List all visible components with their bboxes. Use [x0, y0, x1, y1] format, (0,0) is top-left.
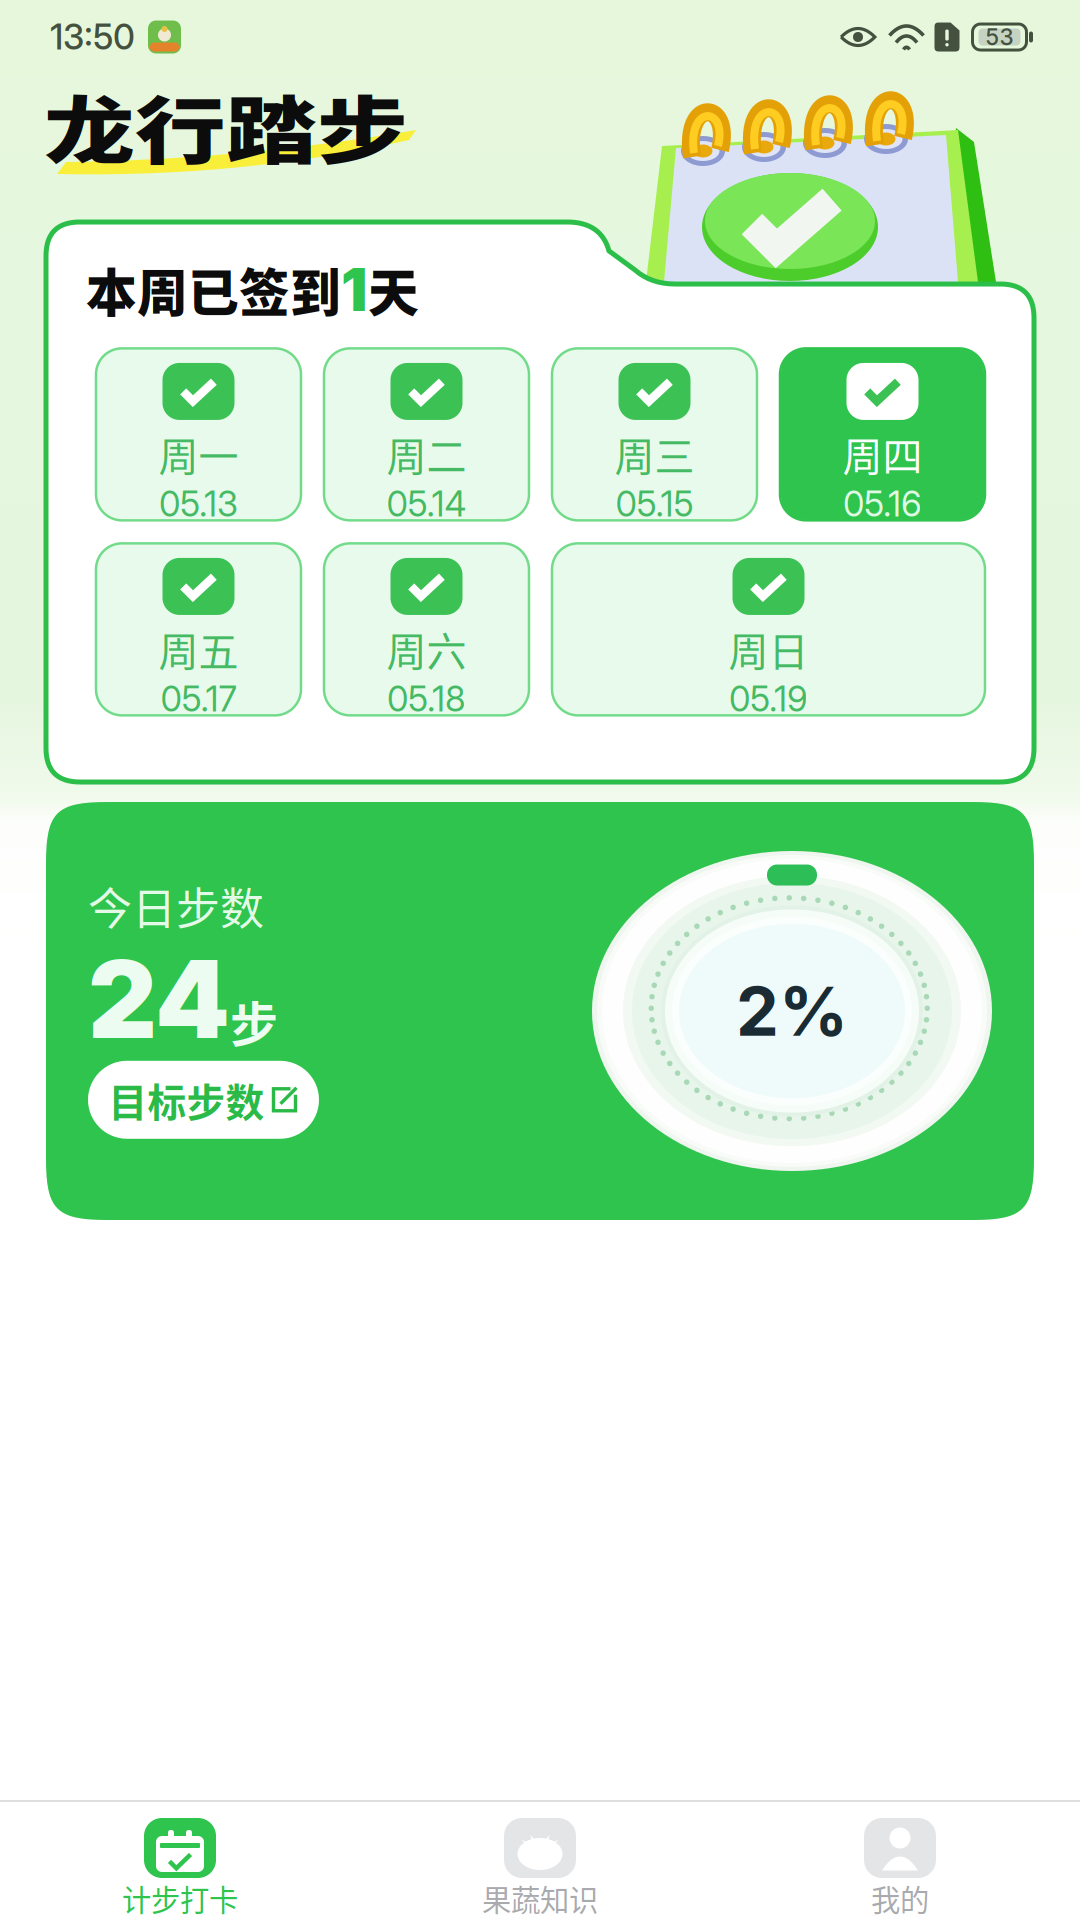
- button[interactable]: 目标步数: [88, 1061, 319, 1139]
- staticText: 周日: [728, 620, 808, 678]
- staticText: 周一: [158, 425, 238, 483]
- staticText: 目标步数: [108, 1072, 264, 1128]
- staticText: 计步打卡: [122, 1877, 238, 1919]
- button[interactable]: 周日: [552, 543, 985, 715]
- staticText: 05.15: [615, 483, 693, 525]
- staticText: 步: [230, 986, 278, 1056]
- button[interactable]: 周三: [552, 348, 757, 520]
- staticText: 05.17: [160, 678, 236, 720]
- staticText: 05.18: [387, 678, 466, 720]
- staticText: 本周已签到: [86, 253, 341, 326]
- button[interactable]: 周一: [96, 348, 301, 520]
- staticText: 周四: [842, 425, 922, 483]
- staticText: 05.19: [729, 678, 808, 720]
- staticText: 周五: [158, 620, 238, 678]
- staticText: 05.13: [159, 483, 238, 525]
- staticText: 果蔬知识: [482, 1877, 598, 1919]
- staticText: 2%: [736, 970, 848, 1052]
- staticText: 05.14: [386, 483, 466, 525]
- staticText: 周二: [386, 425, 466, 483]
- staticText: 周六: [386, 620, 466, 678]
- staticText: 我的: [871, 1877, 929, 1919]
- button[interactable]: 计步打卡: [0, 1802, 360, 1920]
- button[interactable]: 周二: [324, 348, 529, 520]
- button[interactable]: 周五: [96, 543, 301, 715]
- button[interactable]: 周六: [324, 543, 529, 715]
- staticText: 05.16: [843, 483, 922, 525]
- button[interactable]: 周四: [780, 348, 985, 520]
- staticText: 13:50: [50, 16, 135, 58]
- staticText: 24: [88, 935, 230, 1064]
- staticText: 周三: [614, 425, 694, 483]
- staticText: 1: [341, 254, 368, 325]
- staticText: 龙行踏步: [44, 60, 408, 191]
- staticText: 天: [368, 253, 419, 326]
- button[interactable]: 我的: [720, 1802, 1080, 1920]
- staticText: 今日步数: [88, 874, 264, 938]
- button[interactable]: 果蔬知识: [360, 1802, 720, 1920]
- staticText: 53: [985, 23, 1013, 51]
